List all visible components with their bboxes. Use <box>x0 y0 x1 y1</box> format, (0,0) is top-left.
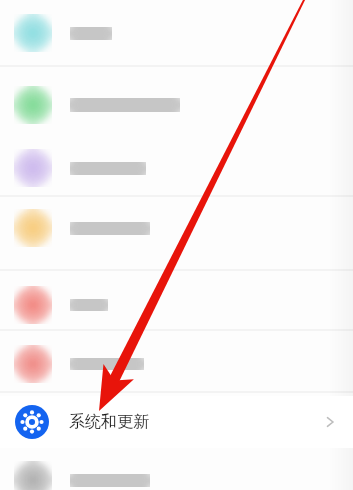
staticText: 系统和更新 <box>69 412 149 432</box>
button[interactable] <box>0 2 353 64</box>
button[interactable] <box>0 140 353 196</box>
button[interactable] <box>0 74 353 136</box>
other: System and update <box>15 405 49 439</box>
button[interactable]: System and update <box>0 396 353 448</box>
button[interactable] <box>0 450 353 490</box>
button[interactable] <box>0 198 353 258</box>
button[interactable] <box>0 278 353 332</box>
button[interactable] <box>0 336 353 392</box>
